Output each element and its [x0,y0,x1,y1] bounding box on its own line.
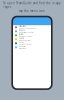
button[interactable]: Accounts [13,45,51,49]
staticText: Settings [15,25,32,31]
button[interactable]: Privacy [13,41,51,45]
staticText: Accounts [18,45,25,47]
button[interactable]: Sounds [13,37,51,41]
staticText: Ringtone, Vibration [18,39,30,41]
staticText: Privacy [18,41,24,43]
staticText: Sounds [18,37,24,39]
button[interactable]: Display [13,33,51,37]
staticText: 9:41 [15,14,22,17]
staticText: 100% [41,14,49,17]
staticText: Badges, Sounds, Banners [18,27,37,29]
staticText: Mail, Contacts [18,47,26,49]
staticText: Notifications [18,25,26,27]
staticText: To open Team Guide and find the in-app P… [3,1,61,9]
staticText: About, Software Update [18,31,33,33]
staticText: tap the menu icon [19,9,45,13]
button[interactable]: Notifications [13,25,51,29]
staticText: Display [18,33,23,35]
button[interactable]: General [13,29,51,33]
staticText: General [18,29,24,31]
staticText: Brightness, Text Size [18,35,32,37]
staticText: Location, Tracking [18,43,31,45]
